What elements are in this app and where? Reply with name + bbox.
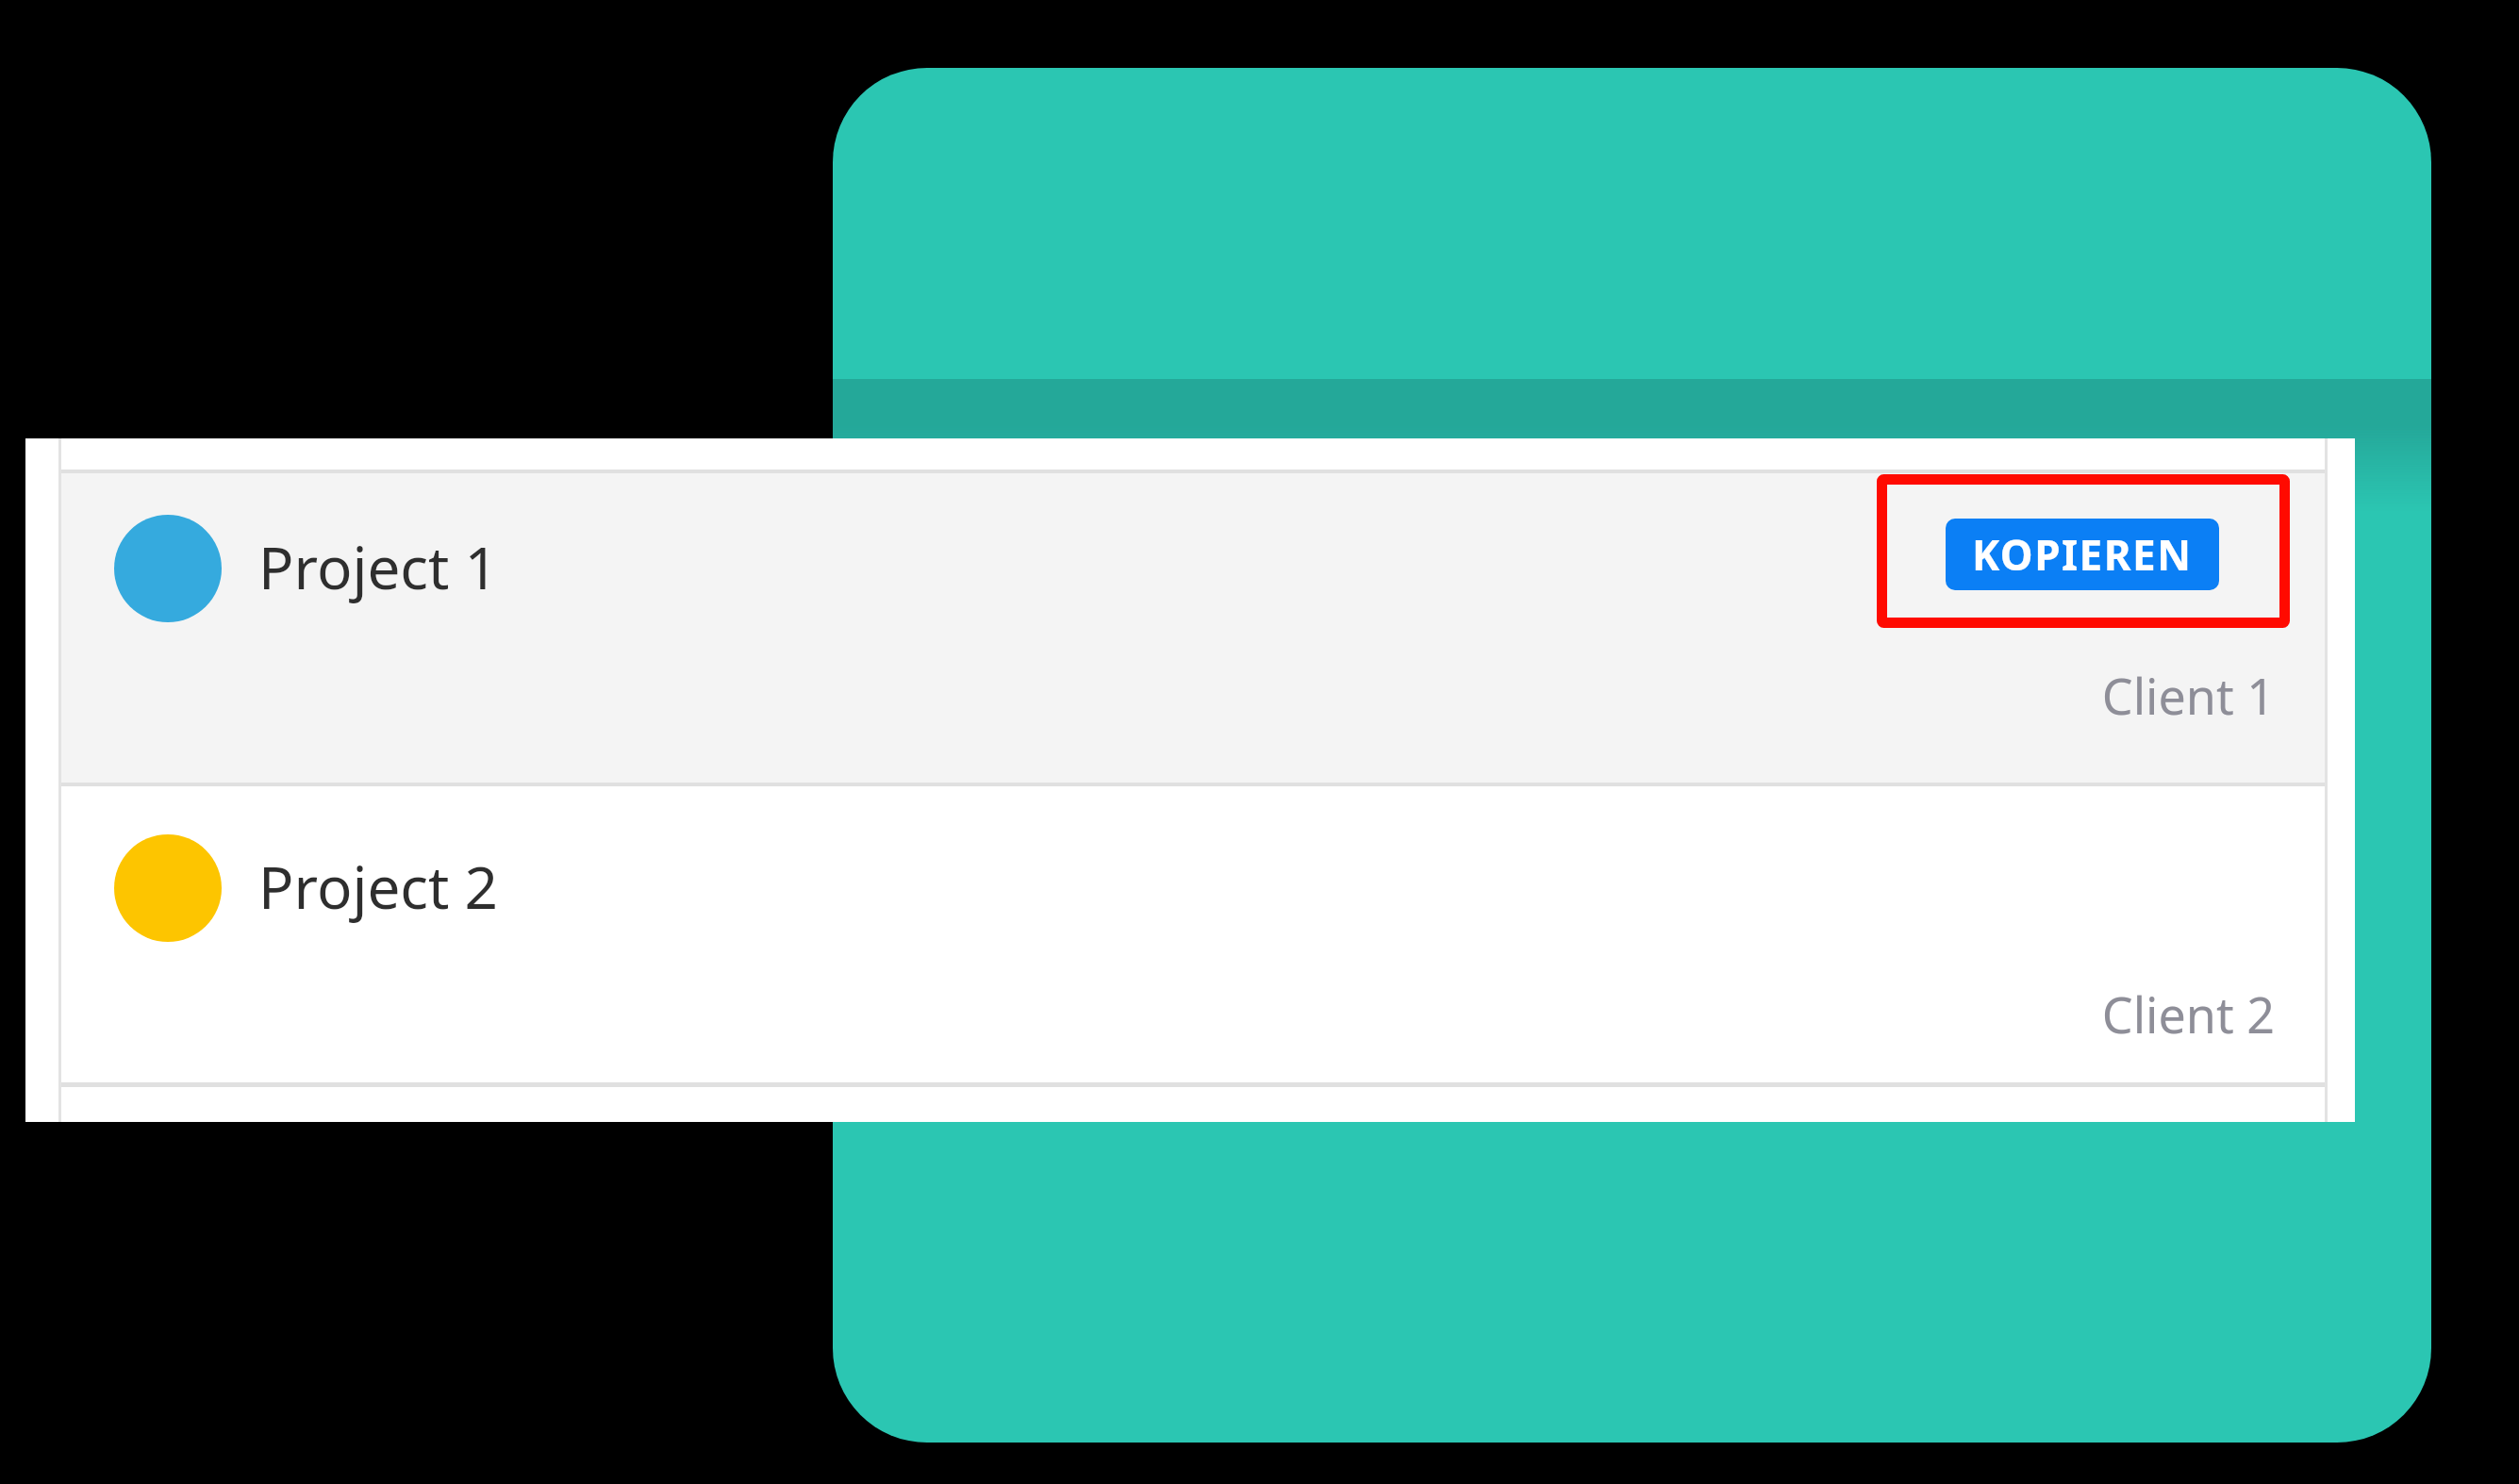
other: Highlight	[1872, 470, 2295, 633]
button[interactable]	[58, 1087, 2325, 1122]
button[interactable]: KOPIEREN	[1946, 519, 2219, 590]
button[interactable]: Project 1	[58, 473, 2325, 783]
staticText: Client 1	[1850, 662, 2275, 737]
staticText: Client 2	[1850, 981, 2275, 1056]
staticText: Project 2	[258, 847, 499, 926]
staticText: Project 1	[258, 527, 499, 606]
button[interactable]: Project 2	[58, 784, 2325, 1082]
staticText: KOPIEREN	[1972, 526, 2193, 583]
